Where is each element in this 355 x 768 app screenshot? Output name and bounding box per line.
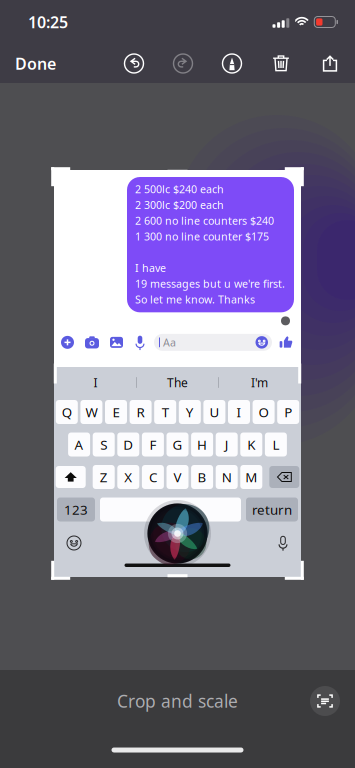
staticText: U bbox=[209, 403, 219, 421]
staticText: K bbox=[247, 436, 255, 453]
staticText: R bbox=[137, 403, 145, 421]
button[interactable]: Undo bbox=[121, 50, 147, 76]
staticText: 19 messages but u we're first. bbox=[135, 276, 285, 291]
staticText: return bbox=[252, 501, 292, 518]
button[interactable]: Live Text bbox=[310, 686, 340, 716]
staticText: I bbox=[93, 374, 97, 390]
staticText: D bbox=[123, 436, 133, 453]
staticText: L bbox=[272, 436, 279, 453]
staticText: B bbox=[198, 468, 207, 486]
button[interactable]: Markup bbox=[219, 50, 245, 76]
staticText: I have bbox=[135, 261, 166, 275]
staticText: Aa bbox=[163, 335, 176, 349]
staticText: 10:25 bbox=[28, 11, 68, 33]
staticText: M bbox=[245, 468, 257, 486]
staticText: So let me know. Thanks bbox=[135, 292, 255, 306]
staticText: Y bbox=[186, 403, 194, 421]
staticText: Done bbox=[15, 53, 56, 74]
staticText: O bbox=[259, 403, 269, 421]
button[interactable]: Delete bbox=[268, 50, 294, 76]
staticText: I bbox=[236, 403, 241, 421]
staticText: Crop and scale bbox=[117, 689, 238, 712]
staticText: E bbox=[112, 403, 119, 421]
staticText: V bbox=[173, 468, 181, 486]
staticText: J bbox=[225, 436, 229, 453]
staticText: 1 300 no line counter $175 bbox=[135, 229, 269, 243]
button[interactable]: Share bbox=[317, 50, 343, 76]
button[interactable]: Redo bbox=[170, 50, 196, 76]
staticText: 2 300lc $200 each bbox=[135, 198, 224, 212]
staticText: G bbox=[172, 436, 182, 453]
staticText: 123 bbox=[64, 501, 88, 518]
staticText: X bbox=[124, 468, 132, 486]
staticText: C bbox=[149, 468, 157, 486]
staticText: T bbox=[162, 403, 169, 421]
staticText: 2 500lc $240 each bbox=[135, 182, 224, 196]
staticText: A bbox=[75, 436, 84, 453]
staticText: I'm bbox=[251, 374, 268, 390]
staticText: S bbox=[100, 436, 107, 453]
button[interactable]: Done bbox=[0, 44, 71, 82]
staticText: 2 600 no line counters $240 bbox=[135, 213, 274, 228]
staticText: H bbox=[197, 436, 207, 453]
staticText: F bbox=[149, 436, 156, 453]
staticText: Q bbox=[62, 403, 72, 421]
staticText: N bbox=[222, 468, 232, 486]
staticText: The bbox=[167, 374, 188, 390]
staticText: W bbox=[85, 403, 97, 421]
staticText: P bbox=[284, 403, 292, 421]
staticText: Z bbox=[100, 468, 108, 486]
